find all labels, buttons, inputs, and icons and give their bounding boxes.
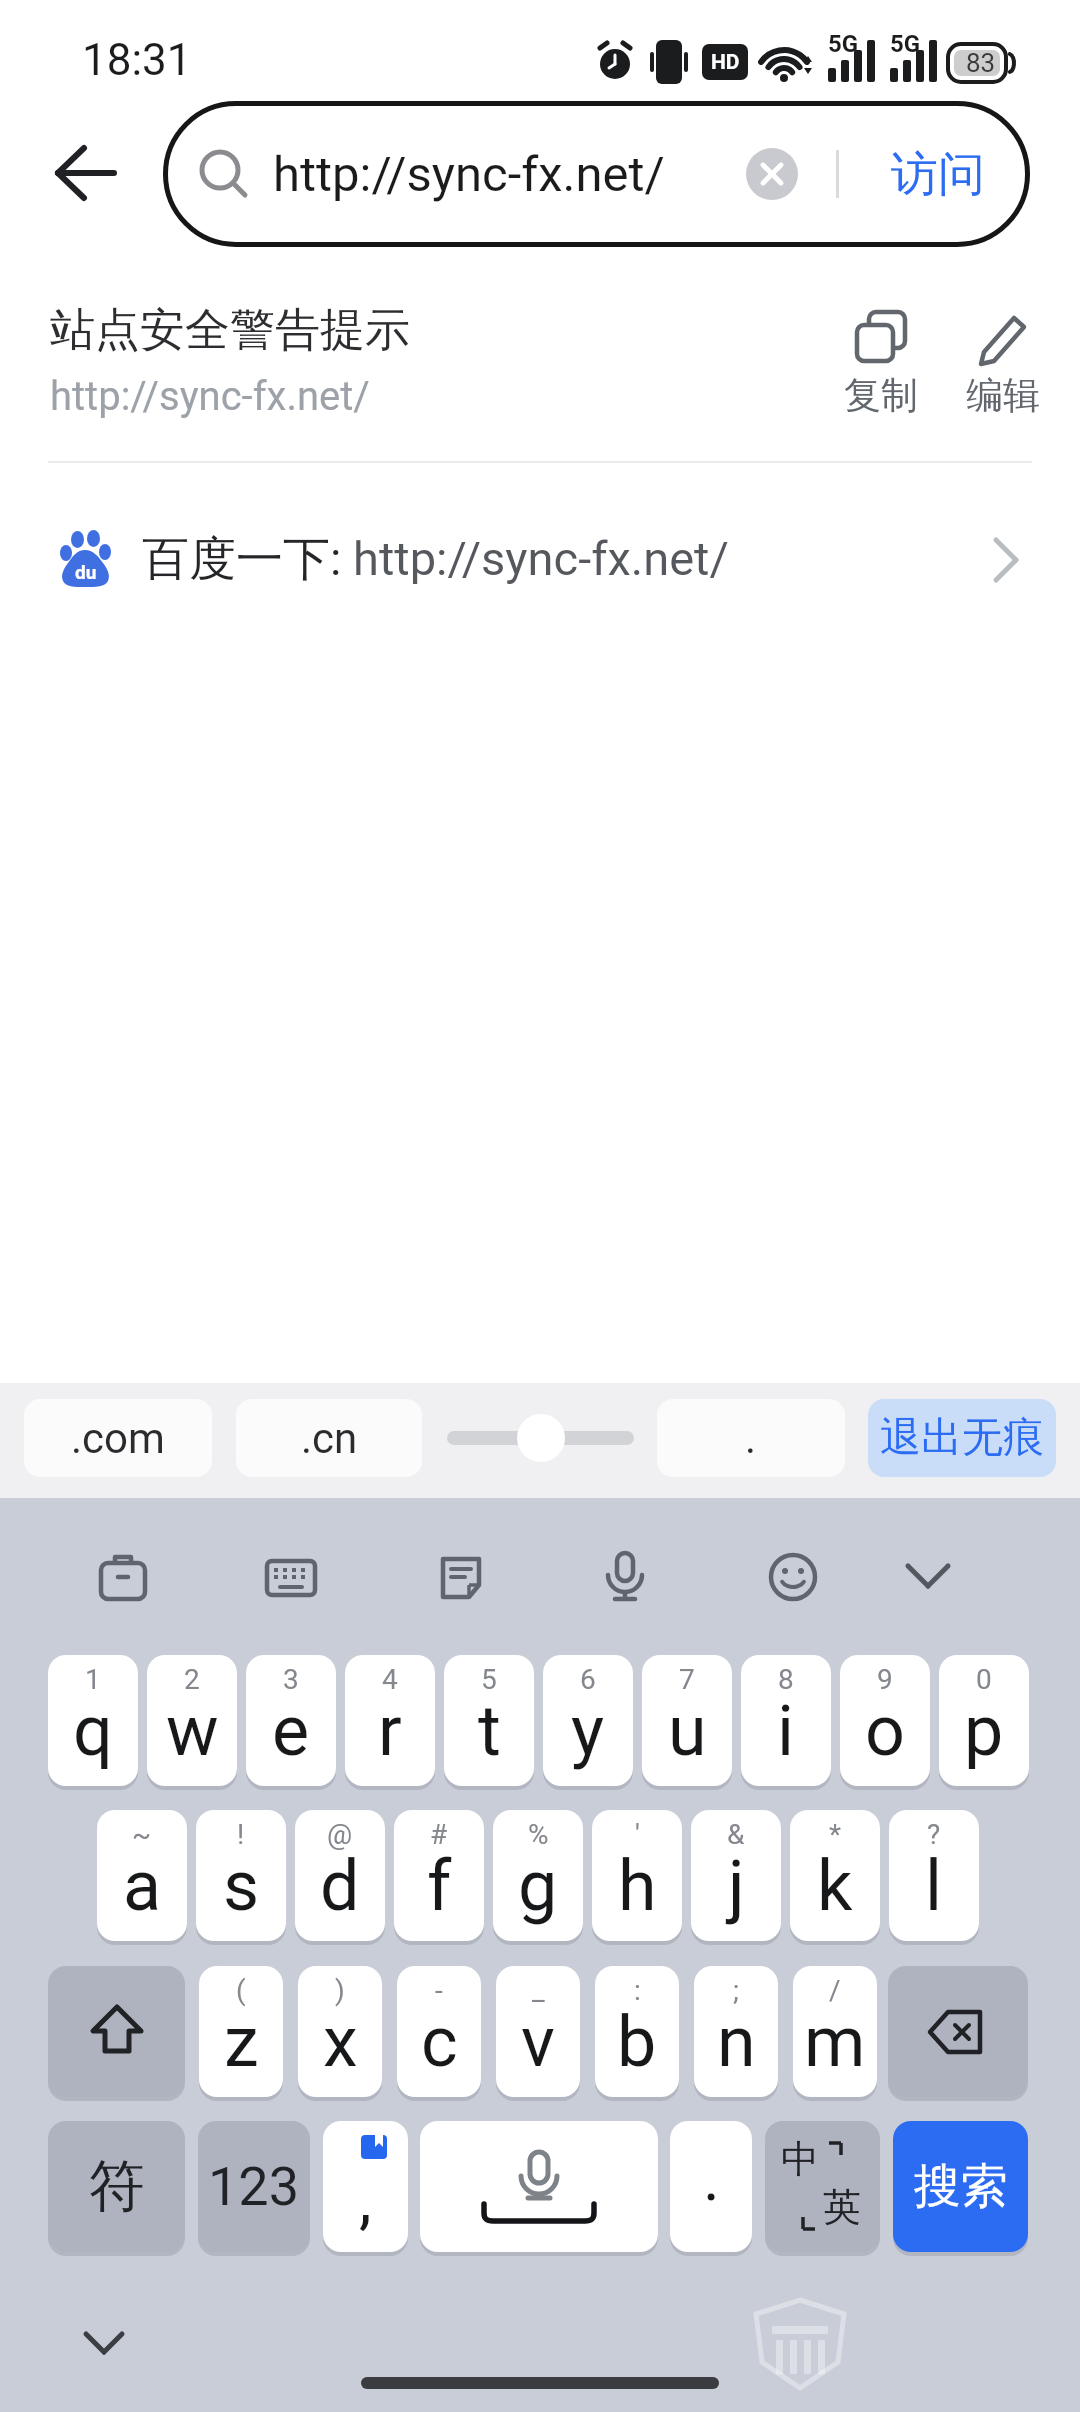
staticText: t (478, 1690, 501, 1772)
staticText: 英 (823, 2183, 861, 2231)
button[interactable]: _ (496, 1966, 580, 2097)
button[interactable]: * (790, 1810, 880, 1941)
button[interactable]: - (397, 1966, 481, 2097)
button[interactable]: ; (694, 1966, 778, 2097)
button[interactable]: 复制 (840, 300, 922, 422)
button[interactable]: 2 (147, 1655, 237, 1786)
staticText: # (430, 1818, 448, 1851)
staticText: f (427, 1845, 452, 1927)
staticText: z (224, 2001, 259, 2083)
button[interactable] (84, 2330, 124, 2358)
staticText: o (865, 1690, 905, 1772)
staticText: .com (71, 1414, 165, 1463)
staticText: ) (335, 1974, 345, 2007)
staticText: x (323, 2001, 358, 2083)
staticText: 18:31 (82, 34, 192, 86)
button[interactable]: .cn (236, 1399, 422, 1477)
button[interactable]: 1 (48, 1655, 138, 1786)
staticText: 符 (89, 2151, 145, 2222)
button[interactable]: 9 (840, 1655, 930, 1786)
staticText: 百度一下: http://sync-fx.net/ (142, 530, 729, 589)
button[interactable] (767, 1551, 819, 1603)
button[interactable]: . (670, 2121, 752, 2252)
staticText: m (804, 2001, 866, 2083)
button[interactable] (746, 148, 798, 200)
button[interactable]: 访问 (856, 101, 1020, 247)
staticText: s (223, 1845, 260, 1927)
staticText: g (518, 1845, 558, 1927)
button[interactable]: / (793, 1966, 877, 2097)
staticText: ? (927, 1818, 941, 1851)
button[interactable]: & (691, 1810, 781, 1941)
button[interactable]: .com (24, 1399, 212, 1477)
button[interactable]: ! (196, 1810, 286, 1941)
staticText: 5G (828, 30, 859, 56)
staticText: & (727, 1818, 745, 1851)
button[interactable] (97, 1551, 149, 1603)
button[interactable]: 退出无痕 (868, 1399, 1056, 1477)
staticText: r (378, 1690, 402, 1772)
staticText: l (925, 1845, 943, 1927)
staticText: http://sync-fx.net/ (273, 146, 665, 203)
staticText: * (829, 1818, 842, 1851)
staticText: q (73, 1690, 113, 1772)
button[interactable]: # (394, 1810, 484, 1941)
button[interactable]: % (493, 1810, 583, 1941)
staticText: ; (733, 1974, 739, 2007)
button[interactable] (52, 142, 118, 204)
button[interactable]: 中 (765, 2121, 880, 2252)
staticText: / (829, 1974, 841, 2007)
button[interactable]: ) (298, 1966, 382, 2097)
staticText: du (75, 561, 97, 583)
button[interactable]: 0 (939, 1655, 1029, 1786)
button[interactable]: 7 (642, 1655, 732, 1786)
staticText: ! (237, 1818, 245, 1851)
button[interactable]: . (657, 1399, 845, 1477)
staticText: e (272, 1690, 310, 1772)
button[interactable]: 123 (198, 2121, 310, 2252)
button[interactable]: 6 (543, 1655, 633, 1786)
button[interactable]: 符 (48, 2121, 185, 2252)
staticText: v (521, 2001, 555, 2083)
button[interactable] (265, 1551, 317, 1603)
staticText: j (728, 1845, 745, 1927)
staticText: 8 (778, 1663, 794, 1696)
button[interactable] (48, 1966, 185, 2097)
button[interactable]: 搜索 (893, 2121, 1028, 2252)
staticText: 5G (890, 30, 921, 56)
staticText: 站点安全警告提示 (50, 302, 410, 359)
button[interactable]: @ (295, 1810, 385, 1941)
button[interactable] (420, 2121, 658, 2252)
button[interactable]: 8 (741, 1655, 831, 1786)
staticText: d (320, 1845, 360, 1927)
button[interactable]: ? (889, 1810, 979, 1941)
button[interactable]: 编辑 (962, 300, 1044, 422)
staticText: c (421, 2001, 458, 2083)
button[interactable] (904, 1560, 952, 1594)
button[interactable]: du (0, 500, 1080, 618)
staticText: 123 (208, 2155, 300, 2218)
button[interactable]: 3 (246, 1655, 336, 1786)
button[interactable] (599, 1551, 651, 1603)
staticText: 7 (679, 1663, 695, 1696)
staticText: 5 (481, 1663, 497, 1696)
button[interactable] (435, 1551, 487, 1603)
staticText: 4 (382, 1663, 398, 1696)
staticText: HD (711, 50, 740, 75)
staticText: 编辑 (966, 372, 1040, 418)
staticText: - (435, 1974, 443, 2007)
staticText: ( (236, 1974, 246, 2007)
staticText: ' (635, 1818, 640, 1851)
button[interactable] (888, 1966, 1028, 2097)
staticText: . (703, 2141, 720, 2216)
button[interactable]: 4 (345, 1655, 435, 1786)
staticText: b (617, 2001, 657, 2083)
button[interactable]: : (595, 1966, 679, 2097)
staticText: 3 (283, 1663, 299, 1696)
button[interactable]: ( (199, 1966, 283, 2097)
button[interactable]: ~ (97, 1810, 187, 1941)
button[interactable]: ' (592, 1810, 682, 1941)
button[interactable]: 5 (444, 1655, 534, 1786)
button[interactable]: , (323, 2121, 408, 2252)
button[interactable] (517, 1414, 565, 1462)
